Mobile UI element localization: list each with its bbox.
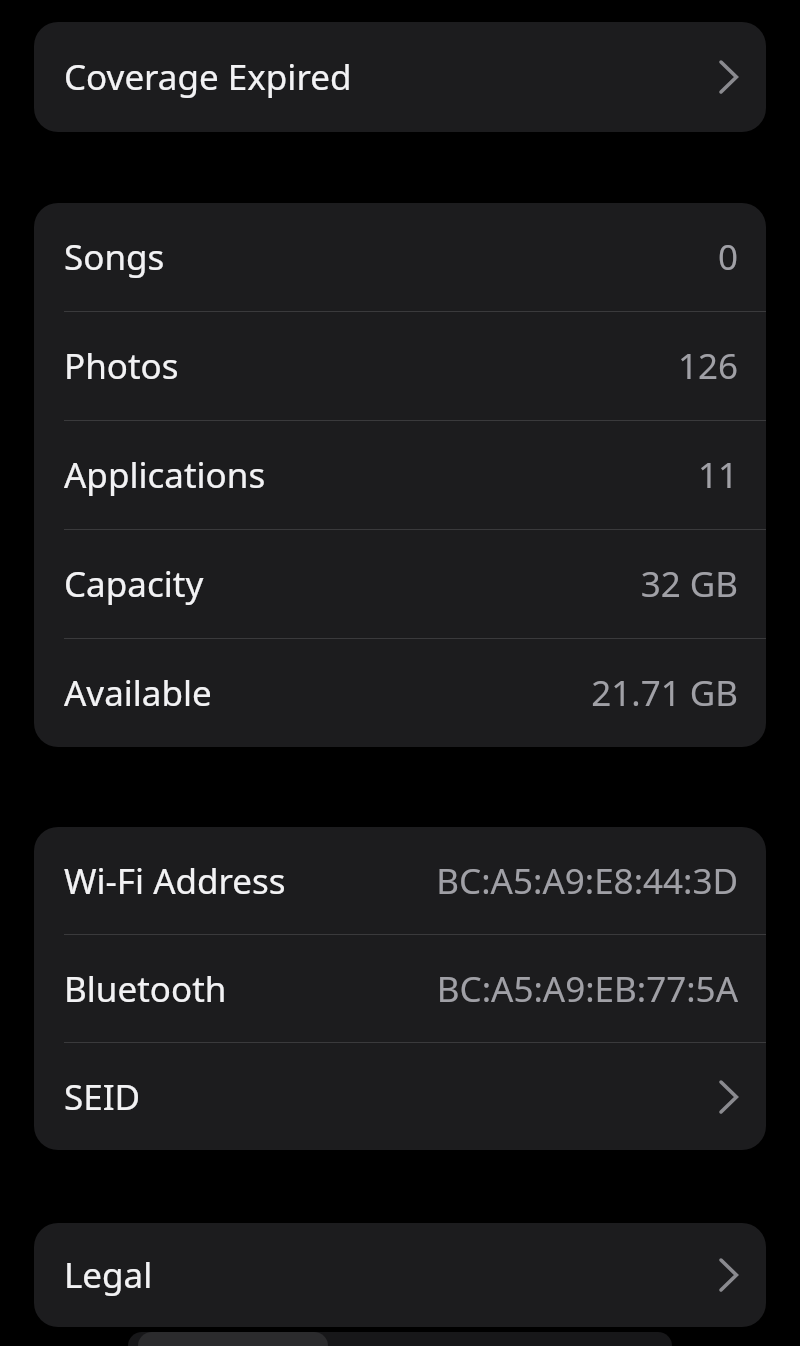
- staticText: Available: [64, 669, 212, 717]
- staticText: Coverage Expired: [64, 53, 352, 101]
- button[interactable]: Capacity: [34, 530, 766, 638]
- staticText: Photos: [64, 342, 179, 390]
- button[interactable]: Available: [34, 639, 766, 747]
- staticText: 126: [677, 342, 738, 390]
- button[interactable]: Songs: [34, 203, 766, 311]
- button[interactable]: Coverage Expired: [34, 22, 766, 132]
- button[interactable]: Bluetooth: [34, 935, 766, 1042]
- staticText: Wi-Fi Address: [64, 857, 286, 905]
- staticText: 32 GB: [640, 560, 738, 608]
- button[interactable]: [128, 1332, 672, 1346]
- button[interactable]: SEID: [34, 1043, 766, 1150]
- staticText: BC:A5:A9:EB:77:5A: [436, 965, 738, 1013]
- button[interactable]: Applications: [34, 421, 766, 529]
- button[interactable]: Legal: [34, 1223, 766, 1327]
- staticText: Bluetooth: [64, 965, 227, 1013]
- staticText: 0: [717, 233, 738, 281]
- staticText: Applications: [64, 451, 266, 499]
- staticText: Legal: [64, 1251, 153, 1299]
- staticText: 21.71 GB: [591, 669, 738, 717]
- staticText: 11: [697, 451, 738, 499]
- staticText: Songs: [64, 233, 165, 281]
- button[interactable]: Photos: [34, 312, 766, 420]
- staticText: SEID: [64, 1073, 141, 1121]
- staticText: Capacity: [64, 560, 204, 608]
- button[interactable]: Wi-Fi Address: [34, 827, 766, 934]
- staticText: BC:A5:A9:E8:44:3D: [436, 857, 738, 905]
